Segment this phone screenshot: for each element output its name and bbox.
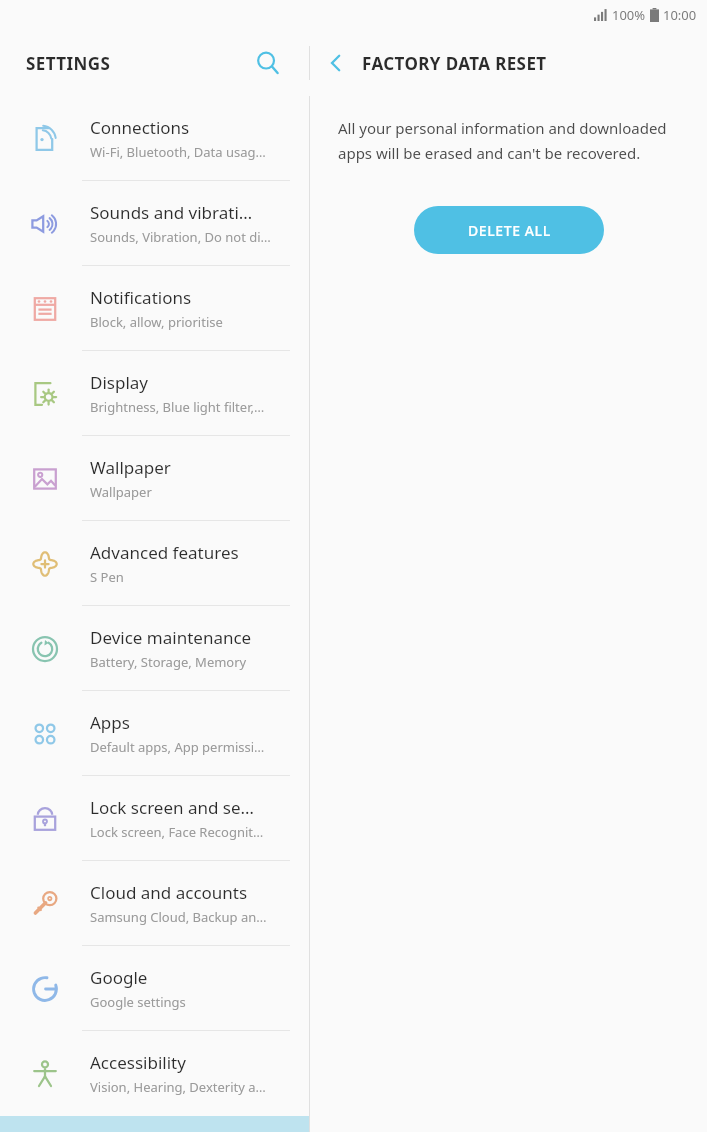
- staticText: Notifications: [90, 286, 192, 309]
- staticText: Cloud and accounts: [90, 881, 248, 904]
- staticText: Wi-Fi, Bluetooth, Data usag…: [90, 143, 266, 161]
- staticText: DELETE ALL: [468, 221, 551, 240]
- staticText: Apps: [90, 711, 130, 734]
- staticText: Lock screen, Face Recognit…: [90, 823, 264, 841]
- button[interactable]: Wallpaper: [0, 436, 310, 521]
- staticText: Device maintenance: [90, 626, 252, 649]
- staticText: S Pen: [90, 568, 124, 586]
- staticText: 10:00: [663, 6, 697, 24]
- button[interactable]: Advanced features: [0, 521, 310, 606]
- staticText: Block, allow, prioritise: [90, 313, 223, 331]
- staticText: Brightness, Blue light filter,…: [90, 398, 265, 416]
- button[interactable]: Display: [0, 351, 310, 436]
- staticText: Wallpaper: [90, 483, 152, 501]
- button[interactable]: Cloud and accounts: [0, 861, 310, 946]
- staticText: Connections: [90, 116, 190, 139]
- staticText: Samsung Cloud, Backup an…: [90, 908, 267, 926]
- staticText: Advanced features: [90, 541, 239, 564]
- staticText: Lock screen and se…: [90, 796, 255, 819]
- button[interactable]: Connections: [0, 96, 310, 181]
- staticText: Google settings: [90, 993, 186, 1011]
- staticText: All your personal information and downlo…: [338, 118, 683, 163]
- staticText: Sounds and vibrati…: [90, 201, 253, 224]
- staticText: Battery, Storage, Memory: [90, 653, 247, 671]
- staticText: Sounds, Vibration, Do not di…: [90, 228, 271, 246]
- button[interactable]: Lock screen and se…: [0, 776, 310, 861]
- button[interactable]: Back: [310, 37, 362, 89]
- staticText: 100%: [612, 6, 646, 24]
- staticText: Vision, Hearing, Dexterity a…: [90, 1078, 266, 1096]
- staticText: Display: [90, 371, 148, 394]
- staticText: Accessibility: [90, 1051, 186, 1074]
- button[interactable]: Accessibility: [0, 1031, 310, 1116]
- staticText: Default apps, App permissi…: [90, 738, 265, 756]
- button[interactable]: Apps: [0, 691, 310, 776]
- button[interactable]: Google: [0, 946, 310, 1031]
- button[interactable]: Search: [246, 41, 290, 85]
- button[interactable]: Sounds and vibrati…: [0, 181, 310, 266]
- button[interactable]: DELETE ALL: [414, 206, 604, 254]
- staticText: SETTINGS: [26, 52, 111, 75]
- button[interactable]: Notifications: [0, 266, 310, 351]
- staticText: Google: [90, 966, 148, 989]
- staticText: Wallpaper: [90, 456, 171, 479]
- button[interactable]: Device maintenance: [0, 606, 310, 691]
- staticText: FACTORY DATA RESET: [362, 52, 547, 75]
